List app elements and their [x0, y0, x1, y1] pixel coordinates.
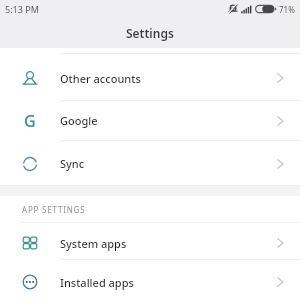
button[interactable]: G [0, 101, 300, 140]
staticText: Other accounts [60, 71, 141, 86]
staticText: System apps [60, 236, 127, 251]
staticText: APP SETTINGS [22, 204, 86, 215]
staticText: Settings [126, 25, 174, 41]
button[interactable]: Other accounts [0, 54, 300, 100]
button[interactable]: Installed apps [0, 260, 300, 300]
staticText: 71% [279, 4, 295, 15]
staticText: Installed apps [60, 275, 134, 290]
staticText: 5:13 PM [5, 3, 39, 15]
staticText: Sync [60, 156, 85, 171]
staticText: Google [60, 113, 98, 128]
staticText: G [24, 110, 36, 132]
button[interactable]: System apps [0, 223, 300, 259]
button[interactable]: Sync [0, 141, 300, 182]
